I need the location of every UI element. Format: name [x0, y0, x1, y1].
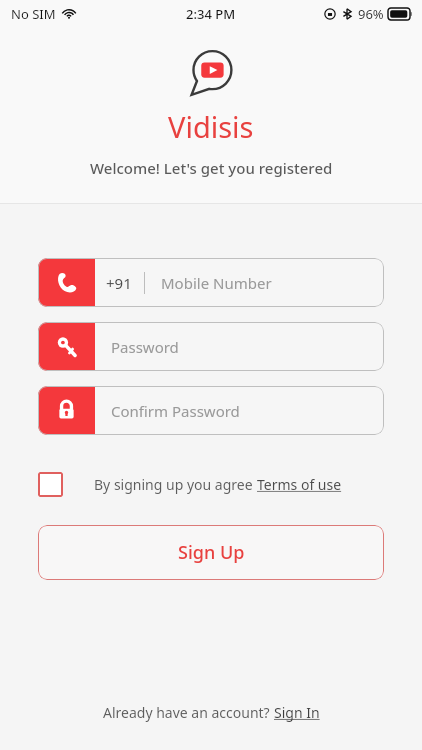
- staticText: 2:34 PM: [186, 5, 236, 23]
- other: Confirm password: [38, 386, 95, 435]
- staticText: Confirm Password: [111, 401, 240, 421]
- button[interactable]: Sign Up: [38, 525, 384, 580]
- button[interactable]: Confirm password: [38, 386, 384, 435]
- staticText: Mobile Number: [161, 273, 272, 293]
- button[interactable]: Agree to terms checkbox: [38, 472, 63, 497]
- staticText: Already have an account?: [103, 703, 274, 722]
- staticText: No SIM: [11, 5, 56, 23]
- other: Password: [38, 322, 95, 371]
- staticText: Sign In: [274, 703, 320, 722]
- button[interactable]: Phone: [38, 258, 384, 307]
- staticText: 96%: [358, 5, 384, 23]
- button[interactable]: By signing up you agree: [94, 475, 342, 494]
- button[interactable]: Already have an account?: [103, 703, 320, 722]
- staticText: Terms of use: [257, 475, 342, 494]
- staticText: +91: [106, 273, 132, 293]
- staticText: By signing up you agree: [94, 475, 257, 494]
- staticText: Welcome! Let's get you registered: [90, 158, 333, 178]
- staticText: Sign Up: [178, 540, 245, 565]
- other: Phone: [38, 258, 95, 307]
- button[interactable]: Password: [38, 322, 384, 371]
- staticText: Vidisis: [168, 107, 254, 146]
- staticText: Password: [111, 337, 179, 357]
